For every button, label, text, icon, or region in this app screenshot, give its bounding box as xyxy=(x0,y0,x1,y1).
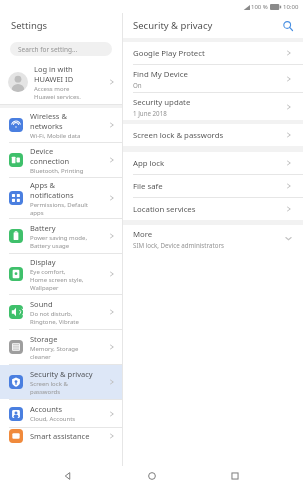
button[interactable]: Accounts xyxy=(0,400,122,427)
staticText: Find My Device xyxy=(133,69,188,80)
staticText: Wi-Fi, Mobile data xyxy=(30,132,81,140)
staticText: Ringtone, Vibrate xyxy=(30,318,79,326)
button[interactable]: Search for setting... xyxy=(10,42,112,56)
button[interactable]: Back xyxy=(53,466,83,486)
staticText: Wireless & xyxy=(30,111,67,121)
button[interactable]: Sound xyxy=(0,295,122,329)
staticText: Home screen style, xyxy=(30,276,84,284)
staticText: Huawei services. xyxy=(34,93,81,101)
staticText: 10:00 xyxy=(283,3,299,11)
staticText: Sound xyxy=(30,299,53,309)
button[interactable]: Search xyxy=(279,17,297,35)
staticText: Wallpaper xyxy=(30,284,59,292)
staticText: connection xyxy=(30,156,70,166)
staticText: Security & privacy xyxy=(30,369,93,379)
staticText: Smart assistance xyxy=(30,431,90,441)
staticText: Bluetooth, Printing xyxy=(30,167,84,175)
button[interactable]: Recents xyxy=(220,466,250,486)
staticText: HUAWEI ID xyxy=(34,74,74,84)
button[interactable]: Screen lock & passwords xyxy=(123,124,303,146)
button[interactable]: Battery xyxy=(0,219,122,253)
staticText: Accounts xyxy=(30,404,63,414)
staticText: Cloud, Accounts xyxy=(30,415,76,423)
button[interactable]: Storage xyxy=(0,330,122,364)
button[interactable]: Log in with xyxy=(0,60,122,104)
staticText: 1 June 2018 xyxy=(133,109,167,117)
button[interactable]: Home xyxy=(137,466,167,486)
staticText: 100 % xyxy=(251,3,268,11)
staticText: More xyxy=(133,229,153,240)
button[interactable]: Display xyxy=(0,254,122,294)
staticText: Access more xyxy=(34,85,70,93)
staticText: notifications xyxy=(30,190,74,200)
staticText: Location services xyxy=(133,204,196,215)
staticText: Storage xyxy=(30,334,58,344)
staticText: Device xyxy=(30,146,54,156)
button[interactable]: Google Play Protect xyxy=(123,42,303,64)
button[interactable]: Security update xyxy=(123,93,303,120)
staticText: Settings xyxy=(11,19,48,32)
staticText: File safe xyxy=(133,181,163,192)
staticText: Display xyxy=(30,257,56,267)
button[interactable]: Apps & xyxy=(0,178,122,218)
staticText: App lock xyxy=(133,158,165,169)
staticText: Log in with xyxy=(34,64,73,74)
staticText: Eye comfort, xyxy=(30,268,66,276)
staticText: cleaner xyxy=(30,353,51,361)
staticText: Memory, Storage xyxy=(30,345,79,353)
staticText: apps xyxy=(30,209,44,217)
staticText: On xyxy=(133,81,142,89)
staticText: networks xyxy=(30,121,63,131)
staticText: Google Play Protect xyxy=(133,48,205,59)
button[interactable]: Find My Device xyxy=(123,65,303,92)
staticText: Search for setting... xyxy=(18,45,78,54)
staticText: Security & privacy xyxy=(133,19,213,32)
button[interactable]: Smart assistance xyxy=(0,428,122,444)
button[interactable]: Device xyxy=(0,143,122,177)
button[interactable]: File safe xyxy=(123,175,303,197)
staticText: SIM lock, Device administrators xyxy=(133,241,224,249)
staticText: Screen lock & xyxy=(30,380,68,388)
staticText: passwords xyxy=(30,388,61,396)
button[interactable]: Wireless & xyxy=(0,108,122,142)
staticText: Battery xyxy=(30,223,56,233)
staticText: Security update xyxy=(133,97,191,108)
button[interactable]: Location services xyxy=(123,198,303,220)
staticText: Battery usage xyxy=(30,242,70,250)
button[interactable]: Security & privacy xyxy=(0,365,122,399)
staticText: Apps & xyxy=(30,180,56,190)
staticText: Screen lock & passwords xyxy=(133,130,224,141)
staticText: Do not disturb, xyxy=(30,310,73,318)
button[interactable]: More xyxy=(123,225,303,252)
staticText: Power saving mode, xyxy=(30,234,87,242)
staticText: Permissions, Default xyxy=(30,201,88,209)
button[interactable]: App lock xyxy=(123,152,303,174)
